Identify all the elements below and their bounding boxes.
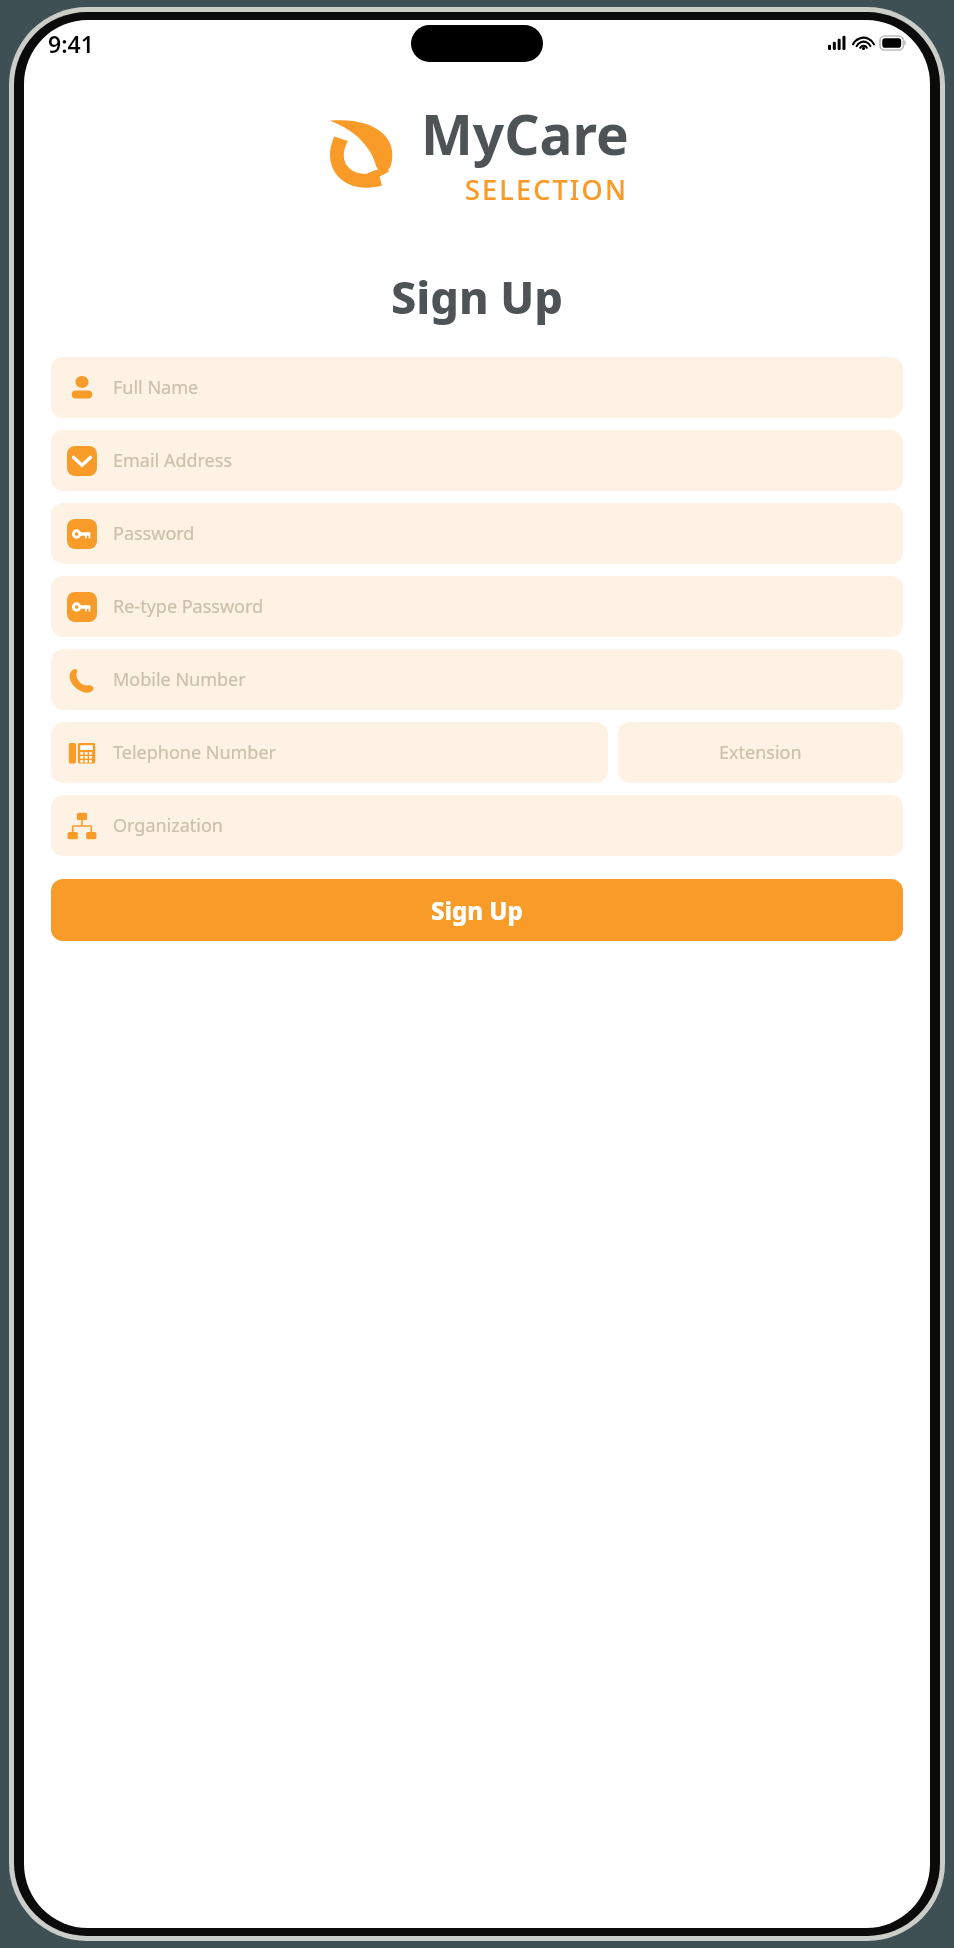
staticText: Full Name: [113, 375, 199, 400]
button[interactable]: Sign Up: [51, 879, 903, 941]
other: Email address: [67, 446, 97, 476]
other: Organization: [67, 811, 97, 841]
staticText: Sign Up: [431, 894, 523, 927]
button[interactable]: Password: [51, 576, 903, 637]
other: Telephone number: [67, 738, 97, 768]
staticText: Mobile Number: [113, 667, 246, 692]
staticText: Password: [113, 521, 195, 546]
other: Full name: [67, 373, 97, 403]
button[interactable]: Extension: [618, 722, 903, 783]
staticText: 9:41: [48, 28, 94, 59]
button[interactable]: Full name: [51, 357, 903, 418]
other: Mobile number: [67, 665, 97, 695]
staticText: Sign Up: [24, 266, 930, 327]
staticText: Extension: [719, 740, 802, 765]
staticText: Email Address: [113, 448, 233, 473]
button[interactable]: Email address: [51, 430, 903, 491]
staticText: Re-type Password: [113, 594, 264, 619]
staticText: Organization: [113, 813, 223, 838]
other: Password: [67, 592, 97, 622]
staticText: Telephone Number: [113, 740, 277, 765]
staticText: SELECTION: [465, 171, 629, 208]
button[interactable]: Password: [51, 503, 903, 564]
other: Password: [67, 519, 97, 549]
button[interactable]: Mobile number: [51, 649, 903, 710]
staticText: MyCare: [421, 96, 629, 171]
button[interactable]: Telephone number: [51, 722, 608, 783]
button[interactable]: Organization: [51, 795, 903, 856]
